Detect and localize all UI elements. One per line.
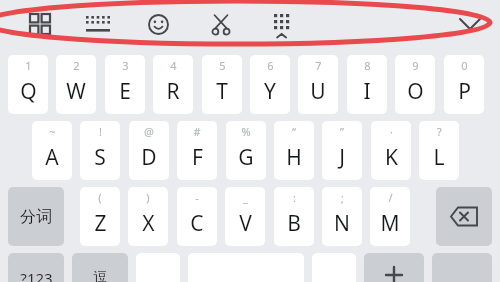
staticText: Q <box>20 77 37 106</box>
staticText: ) <box>146 190 150 205</box>
staticText: B <box>287 209 301 238</box>
staticText: O <box>407 77 424 106</box>
staticText: 分词 <box>20 207 52 227</box>
staticText: C <box>190 209 204 238</box>
button[interactable]: 5 <box>202 55 242 114</box>
staticText: N <box>334 209 350 238</box>
button[interactable]: “ <box>274 121 314 180</box>
staticText: F <box>192 143 203 172</box>
button[interactable]: 1 <box>8 55 48 114</box>
button[interactable]: · <box>371 121 411 180</box>
staticText: ! <box>99 124 102 139</box>
button[interactable]: # <box>177 121 217 180</box>
staticText: 3 <box>122 58 129 73</box>
button[interactable]: More layouts <box>265 6 301 42</box>
staticText: U <box>310 77 326 106</box>
button[interactable]: : <box>274 187 314 246</box>
button[interactable]: ?123 <box>8 253 64 282</box>
staticText: T <box>216 77 228 106</box>
staticText: Z <box>94 209 107 238</box>
button[interactable]: ! <box>80 121 120 180</box>
button[interactable]: 逗 <box>72 253 128 282</box>
button[interactable]: 6 <box>250 55 290 114</box>
button[interactable]: 4 <box>153 55 193 114</box>
button[interactable]: Newline <box>364 253 424 282</box>
staticText: 逗 <box>93 269 108 282</box>
button[interactable]: 2 <box>56 55 96 114</box>
button[interactable]: 分词 <box>8 187 64 246</box>
staticText: D <box>141 143 157 172</box>
staticText: 0 <box>461 58 468 73</box>
button[interactable]: Clipboard <box>203 6 239 42</box>
staticText: 2 <box>73 58 80 73</box>
button[interactable]: ( <box>80 187 120 246</box>
staticText: # <box>193 124 201 139</box>
button[interactable]: 0 <box>444 55 484 114</box>
button[interactable]: @ <box>129 121 169 180</box>
staticText: ( <box>98 190 102 205</box>
staticText: G <box>238 143 254 172</box>
staticText: % <box>241 124 251 139</box>
staticText: J <box>339 143 345 172</box>
button[interactable]: ; <box>322 187 362 246</box>
staticText: - <box>195 190 199 205</box>
staticText: / <box>388 190 393 205</box>
staticText: 6 <box>267 58 274 73</box>
staticText: K <box>385 143 398 172</box>
staticText: L <box>433 143 445 172</box>
staticText: Y <box>264 77 276 106</box>
button[interactable]: Keyboard layout <box>80 6 116 42</box>
button[interactable]: ~ <box>32 121 72 180</box>
button[interactable]: 9 <box>395 55 435 114</box>
staticText: ; <box>341 190 344 205</box>
button[interactable]: ? <box>419 121 459 180</box>
button[interactable]: Panels <box>22 6 58 42</box>
staticText: W <box>66 77 86 106</box>
staticText: P <box>458 77 471 106</box>
staticText: 4 <box>170 58 177 73</box>
button[interactable]: ” <box>322 121 362 180</box>
staticText: A <box>45 143 59 172</box>
staticText: 1 <box>25 58 32 73</box>
staticText: 9 <box>412 58 419 73</box>
button[interactable]: Backspace <box>436 187 492 246</box>
staticText: S <box>94 143 106 172</box>
button[interactable]: ) <box>128 187 168 246</box>
button[interactable]: 3 <box>105 55 145 114</box>
staticText: ~ <box>49 124 56 139</box>
button[interactable]: Hide keyboard <box>452 6 488 42</box>
staticText: 8 <box>364 58 371 73</box>
staticText: ? <box>437 124 442 139</box>
staticText: V <box>239 209 252 238</box>
staticText: ” <box>340 124 344 139</box>
staticText: E <box>119 77 131 106</box>
staticText: “ <box>292 124 296 139</box>
button[interactable]: - <box>177 187 217 246</box>
staticText: @ <box>144 124 154 139</box>
staticText: _ <box>243 190 248 205</box>
button[interactable]: 8 <box>347 55 387 114</box>
staticText: : <box>293 190 296 205</box>
staticText: X <box>142 209 155 238</box>
staticText: I <box>363 77 371 106</box>
staticText: R <box>166 77 180 106</box>
staticText: H <box>286 143 302 172</box>
staticText: ?123 <box>20 268 53 282</box>
button[interactable]: _ <box>225 187 265 246</box>
staticText: M <box>380 209 400 238</box>
button[interactable]: Emoji <box>140 6 176 42</box>
staticText: 7 <box>315 58 322 73</box>
staticText: 5 <box>219 58 226 73</box>
button[interactable]: 7 <box>298 55 338 114</box>
button[interactable]: / <box>370 187 410 246</box>
staticText: · <box>390 124 393 139</box>
button[interactable]: % <box>226 121 266 180</box>
